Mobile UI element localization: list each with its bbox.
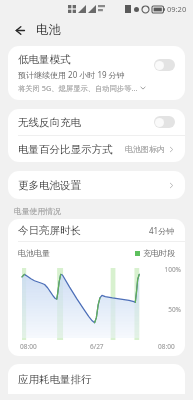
staticText: 6/27	[90, 342, 104, 351]
staticText: 电量百分比显示方式	[18, 143, 113, 156]
staticText: 09:20	[167, 4, 187, 14]
button[interactable]: 低电量模式	[8, 46, 185, 100]
staticText: 电池电量	[18, 248, 50, 258]
button[interactable]: 电量百分比显示方式	[8, 136, 185, 162]
staticText: 电量使用情况	[14, 206, 61, 216]
staticText: 08:00	[158, 342, 175, 351]
staticText: 41分钟	[149, 225, 175, 236]
button[interactable]: Toggle	[154, 59, 175, 71]
staticText: 充电时段	[143, 248, 175, 258]
staticText: 预计继续使用 20 小时 19 分钟	[18, 69, 125, 80]
staticText: 今日亮屏时长	[18, 224, 81, 237]
button[interactable]: 无线反向充电	[8, 109, 185, 135]
staticText: 无线反向充电	[18, 116, 81, 129]
staticText: 50%	[145, 305, 181, 314]
staticText: 应用耗电量排行	[18, 373, 92, 386]
button[interactable]: Back	[9, 20, 29, 40]
staticText: 更多电池设置	[18, 179, 81, 192]
button[interactable]: 今日亮屏时长	[8, 219, 185, 241]
staticText: 100%	[145, 265, 181, 274]
staticText: 08:00	[20, 342, 37, 351]
button[interactable]: Toggle	[154, 116, 175, 128]
button[interactable]: 更多电池设置	[8, 171, 185, 199]
staticText: 电池	[36, 22, 61, 38]
button[interactable]: 应用耗电量排行	[8, 364, 185, 394]
staticText: 电池图标内	[125, 144, 165, 154]
staticText: 低电量模式	[18, 53, 71, 66]
staticText: 将关闭 5G、熄屏显示、自动同步等...	[18, 83, 138, 93]
